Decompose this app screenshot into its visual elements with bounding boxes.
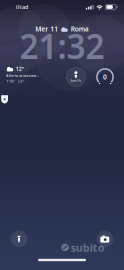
staticText: Allerta arancione… [6, 73, 39, 78]
button[interactable]: Notifications [1, 95, 9, 104]
staticText: Roma [71, 25, 89, 33]
button[interactable]: Camera [96, 230, 114, 248]
staticText: subito [71, 240, 105, 255]
staticText: 12° [16, 65, 24, 72]
staticText: km/h [70, 78, 81, 83]
staticText: 21:32 [19, 24, 104, 68]
staticText: ↑18° ↓9° [6, 79, 24, 84]
staticText: 0 [103, 73, 107, 81]
staticText: iliad [16, 3, 28, 11]
staticText: Mer 11 [35, 25, 58, 33]
button[interactable]: Flashlight [10, 230, 28, 248]
